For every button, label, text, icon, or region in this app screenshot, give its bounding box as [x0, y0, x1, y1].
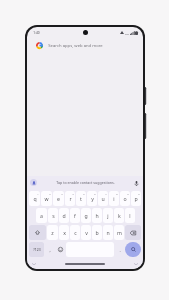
button[interactable]: 2	[41, 191, 52, 206]
staticText: 7	[105, 192, 107, 195]
staticText: o	[123, 195, 127, 202]
staticText: q	[33, 195, 37, 202]
staticText: h	[95, 212, 99, 219]
staticText: n	[106, 229, 110, 236]
staticText: e	[57, 195, 60, 202]
staticText: 4	[72, 192, 74, 195]
button[interactable]: 8	[109, 191, 119, 206]
button[interactable]: d	[59, 208, 69, 223]
button[interactable]: Emoji	[55, 242, 65, 257]
staticText: c	[74, 229, 77, 236]
staticText: u	[101, 195, 105, 202]
staticText: t	[80, 195, 82, 202]
button[interactable]: l	[125, 208, 135, 223]
staticText: 3	[61, 192, 63, 195]
button[interactable]: g	[81, 208, 91, 223]
button[interactable]: j	[103, 208, 113, 223]
staticText: r	[69, 195, 72, 202]
staticText: LTE	[125, 32, 129, 35]
button[interactable]: k	[114, 208, 124, 223]
button[interactable]: z	[47, 225, 58, 240]
button[interactable]: 0	[131, 191, 141, 206]
staticText: x	[63, 229, 66, 236]
button[interactable]: ?123	[29, 242, 44, 257]
button[interactable]: s	[48, 208, 58, 223]
staticText: s	[52, 212, 55, 219]
button[interactable]: 7	[98, 191, 108, 206]
button[interactable]: 6	[87, 191, 97, 206]
staticText: w	[44, 195, 49, 202]
staticText: a	[40, 212, 43, 219]
staticText: z	[51, 229, 54, 236]
staticText: 6	[94, 192, 96, 195]
staticText: i	[113, 195, 115, 202]
staticText: 1	[37, 192, 39, 195]
staticText: ,	[49, 247, 51, 253]
button[interactable]: b	[92, 225, 102, 240]
staticText: 2	[49, 192, 51, 195]
staticText: y	[91, 195, 94, 202]
button[interactable]: 5	[76, 191, 86, 206]
staticText: 5	[83, 192, 85, 195]
staticText: l	[129, 212, 131, 219]
button[interactable]: n	[103, 225, 113, 240]
staticText: 1:40	[33, 31, 40, 35]
button[interactable]: Contact suggestions	[30, 179, 37, 186]
button[interactable]: Comma	[45, 242, 54, 257]
button[interactable]: Search apps, web and more	[31, 38, 139, 53]
staticText: k	[118, 212, 121, 219]
button[interactable]: a	[36, 208, 47, 223]
button[interactable]: 1	[29, 191, 40, 206]
button[interactable]: h	[92, 208, 102, 223]
button[interactable]: Shift	[29, 225, 46, 240]
staticText: v	[85, 229, 88, 236]
staticText: 8	[116, 192, 118, 195]
button[interactable]: v	[81, 225, 91, 240]
staticText: 0	[138, 192, 140, 195]
button[interactable]: c	[70, 225, 80, 240]
button[interactable]: x	[59, 225, 69, 240]
staticText: 9	[127, 192, 129, 195]
button[interactable]: Backspace	[125, 225, 141, 240]
button[interactable]: 4	[65, 191, 75, 206]
staticText: j	[107, 212, 109, 219]
staticText: Search apps, web and more	[48, 43, 103, 49]
button[interactable]: 9	[120, 191, 130, 206]
button[interactable]: f	[70, 208, 80, 223]
staticText: f	[74, 212, 76, 219]
button[interactable]: Voice input	[132, 179, 140, 187]
staticText: m	[117, 229, 122, 236]
staticText: ?123	[33, 247, 41, 252]
staticText: Tap to enable contact suggestions.	[56, 180, 115, 185]
staticText: b	[95, 229, 99, 236]
staticText: p	[134, 195, 138, 202]
button[interactable]: Search	[125, 242, 141, 257]
button[interactable]: m	[114, 225, 124, 240]
staticText: g	[84, 212, 88, 219]
staticText: d	[62, 212, 66, 219]
button[interactable]: 3	[53, 191, 64, 206]
staticText: .	[119, 247, 121, 253]
